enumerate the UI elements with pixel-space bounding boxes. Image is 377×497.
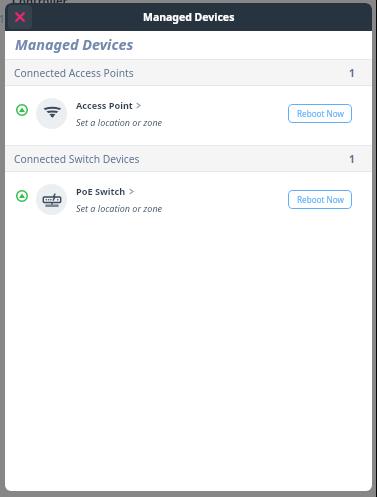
button[interactable]: Access Point — [5, 86, 372, 145]
staticText: Connected Access Points — [14, 66, 134, 80]
staticText: Controller — [12, 0, 68, 8]
button[interactable]: PoE Switch — [5, 172, 372, 231]
staticText: Reboot Now — [297, 108, 344, 119]
button[interactable]: Close — [8, 5, 32, 29]
staticText: PoE Switch — [76, 185, 126, 197]
staticText: 1 — [349, 152, 355, 166]
staticText: 1 — [349, 66, 355, 80]
staticText: Connected Switch Devices — [14, 152, 140, 166]
staticText: Access Point — [76, 99, 133, 111]
staticText: Set a location or zone — [76, 202, 163, 214]
staticText: 1 — [0, 12, 5, 26]
button[interactable]: Reboot Now — [288, 104, 352, 123]
staticText: Set a location or zone — [76, 116, 163, 128]
staticText: Reboot Now — [297, 194, 344, 205]
staticText: Managed Devices — [143, 10, 235, 24]
staticText: Managed Devices — [15, 35, 134, 55]
button[interactable]: Reboot Now — [288, 190, 352, 209]
